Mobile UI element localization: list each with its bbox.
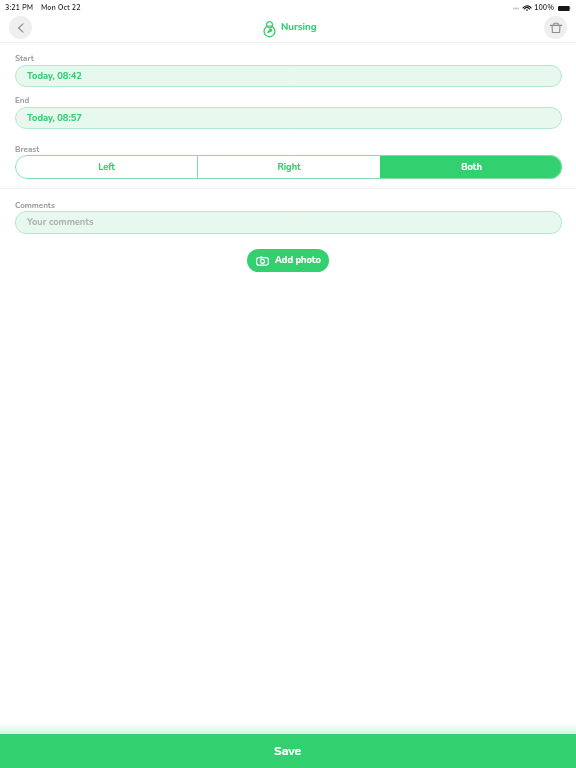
staticText: Mon Oct 22 (41, 3, 81, 13)
button[interactable]: Today, 08:42 (15, 65, 562, 87)
staticText: Left (98, 161, 115, 174)
button[interactable]: Left (15, 155, 197, 179)
staticText: Today, 08:42 (27, 70, 82, 83)
staticText: 3:21 PM (5, 3, 34, 13)
staticText: Both (461, 161, 482, 174)
staticText: Right (277, 161, 301, 174)
button[interactable]: Save (0, 734, 576, 768)
button[interactable]: Back (9, 16, 32, 39)
staticText: Breast (15, 144, 40, 155)
button[interactable]: Both (380, 155, 562, 179)
staticText: Add photo (275, 254, 321, 267)
button[interactable]: Delete (544, 16, 567, 39)
staticText: Comments (15, 200, 55, 211)
staticText: Start (15, 53, 34, 64)
button[interactable]: Add photo (247, 249, 329, 272)
staticText: Save (274, 743, 302, 760)
staticText: Nursing (281, 20, 317, 33)
staticText: 100% (534, 3, 555, 13)
staticText: Your comments (27, 216, 94, 229)
button[interactable]: Your comments (15, 211, 562, 234)
staticText: Today, 08:57 (27, 112, 82, 125)
staticText: End (15, 95, 30, 106)
button[interactable]: Right (198, 155, 380, 179)
button[interactable]: Today, 08:57 (15, 107, 562, 129)
